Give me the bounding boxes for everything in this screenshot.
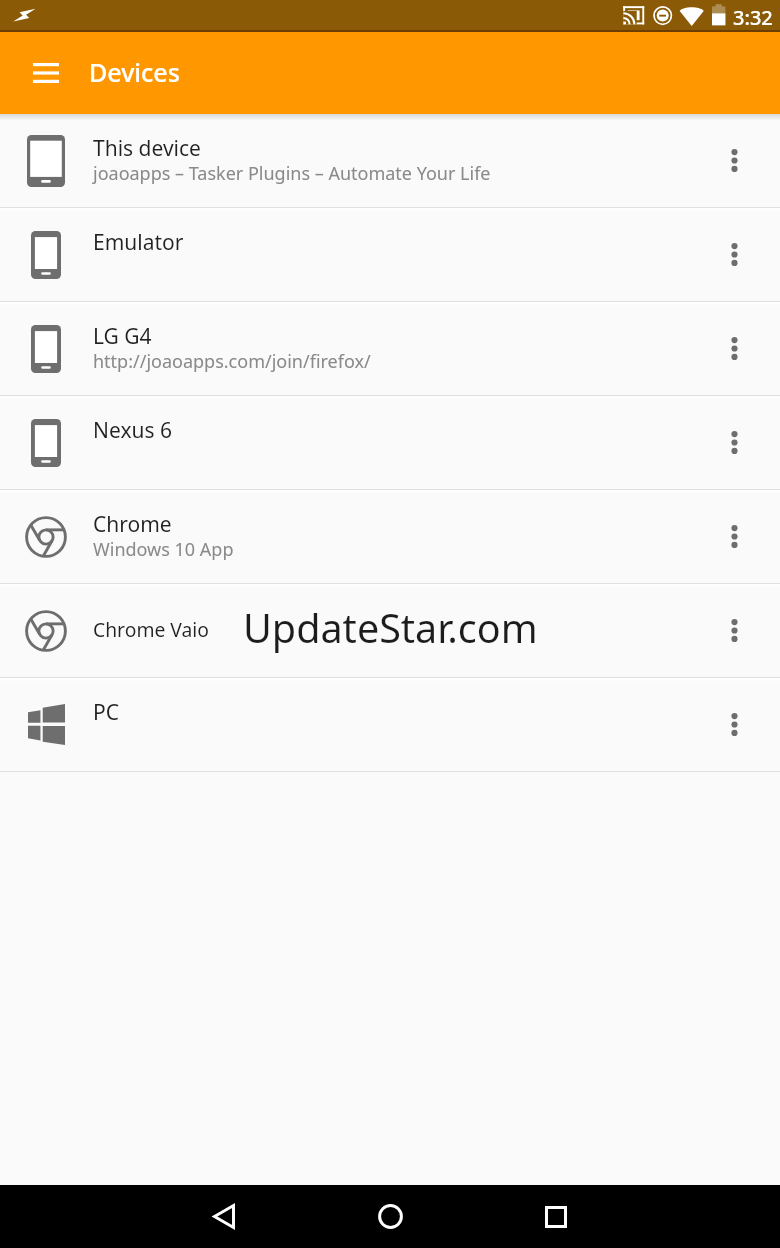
staticText: Nexus 6: [93, 416, 173, 445]
staticText: Devices: [89, 55, 180, 89]
staticText: Chrome: [93, 510, 172, 539]
button[interactable]: Chrome: [0, 490, 780, 584]
button[interactable]: Home: [335, 1185, 445, 1248]
button[interactable]: More options: [688, 678, 780, 771]
staticText: PC: [93, 698, 119, 727]
button[interactable]: More options: [688, 396, 780, 489]
button[interactable]: Back: [169, 1185, 279, 1248]
staticText: LG G4: [93, 322, 152, 351]
button[interactable]: More options: [688, 208, 780, 301]
button[interactable]: Chrome Vaio: [0, 584, 780, 678]
button[interactable]: LG G4: [0, 302, 780, 396]
staticText: Emulator: [93, 228, 184, 257]
button[interactable]: PC: [0, 678, 780, 772]
button[interactable]: More options: [688, 584, 780, 677]
staticText: 3:32: [733, 4, 773, 31]
button[interactable]: More options: [688, 490, 780, 583]
staticText: joaoapps – Tasker Plugins – Automate You…: [93, 161, 491, 186]
button[interactable]: Emulator: [0, 208, 780, 302]
staticText: Chrome Vaio: [93, 616, 209, 642]
staticText: UpdateStar.com: [243, 601, 538, 655]
staticText: http://joaoapps.com/join/firefox/: [93, 349, 371, 374]
button[interactable]: More options: [688, 302, 780, 395]
button[interactable]: This device: [0, 114, 780, 208]
staticText: This device: [93, 134, 201, 163]
button[interactable]: More options: [688, 114, 780, 207]
button[interactable]: Recents: [501, 1185, 611, 1248]
staticText: Windows 10 App: [93, 537, 234, 562]
button[interactable]: Open navigation menu: [18, 45, 74, 101]
button[interactable]: Nexus 6: [0, 396, 780, 490]
